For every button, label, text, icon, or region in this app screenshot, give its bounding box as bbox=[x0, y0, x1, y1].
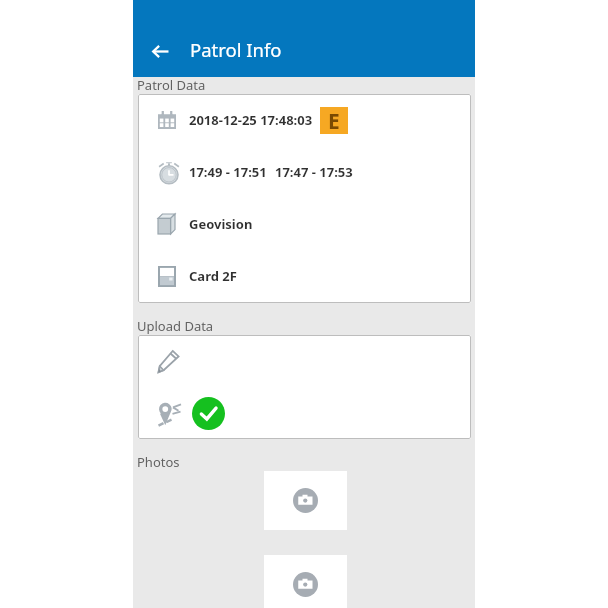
staticText: 2018-12-25 17:48:03 bbox=[189, 111, 313, 129]
button[interactable]: Back bbox=[141, 32, 179, 70]
staticText: Patrol Info bbox=[190, 37, 282, 62]
button[interactable]: Location uploaded bbox=[138, 387, 471, 439]
button[interactable]: Card 2F bbox=[138, 250, 471, 302]
button[interactable]: 17:49 - 17:51 bbox=[138, 146, 471, 198]
staticText: Geovision bbox=[189, 215, 253, 233]
staticText: E bbox=[328, 107, 340, 134]
staticText: Card 2F bbox=[189, 267, 237, 285]
button[interactable]: Photo bbox=[264, 471, 347, 530]
button[interactable]: Edit remark bbox=[138, 335, 471, 387]
button[interactable]: Geovision bbox=[138, 198, 471, 250]
button[interactable]: 2018-12-25 17:48:03 bbox=[138, 94, 471, 146]
staticText: 17:49 - 17:51 bbox=[189, 163, 267, 181]
staticText: Photos bbox=[137, 453, 180, 471]
staticText: 17:47 - 17:53 bbox=[275, 163, 353, 181]
staticText: Upload Data bbox=[137, 317, 214, 335]
staticText: Patrol Data bbox=[137, 76, 206, 94]
button[interactable]: Photo bbox=[264, 555, 347, 608]
